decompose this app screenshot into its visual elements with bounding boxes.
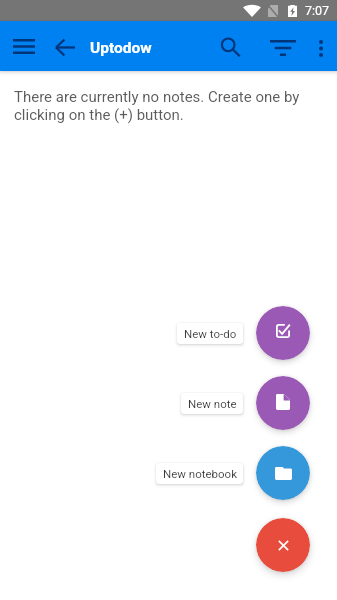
- staticText: There are currently no notes. Create one…: [14, 88, 307, 124]
- button[interactable]: Navigate up: [48, 30, 82, 64]
- staticText: New to-do: [184, 327, 237, 340]
- staticText: Uptodow: [90, 39, 152, 57]
- button[interactable]: New note: [181, 393, 243, 414]
- button[interactable]: New to-do: [177, 323, 243, 344]
- button[interactable]: More options: [306, 34, 335, 63]
- button[interactable]: Open navigation drawer: [6, 28, 42, 64]
- button[interactable]: Close menu: [256, 518, 310, 572]
- staticText: New notebook: [163, 467, 237, 480]
- button[interactable]: New notebook: [256, 446, 310, 500]
- staticText: New note: [188, 397, 237, 410]
- button[interactable]: New notebook: [156, 463, 243, 484]
- button[interactable]: Search: [212, 29, 248, 65]
- button[interactable]: Sort: [265, 30, 301, 66]
- button[interactable]: New note: [256, 376, 310, 430]
- button[interactable]: New to-do: [256, 306, 310, 360]
- staticText: 7:07: [305, 3, 330, 18]
